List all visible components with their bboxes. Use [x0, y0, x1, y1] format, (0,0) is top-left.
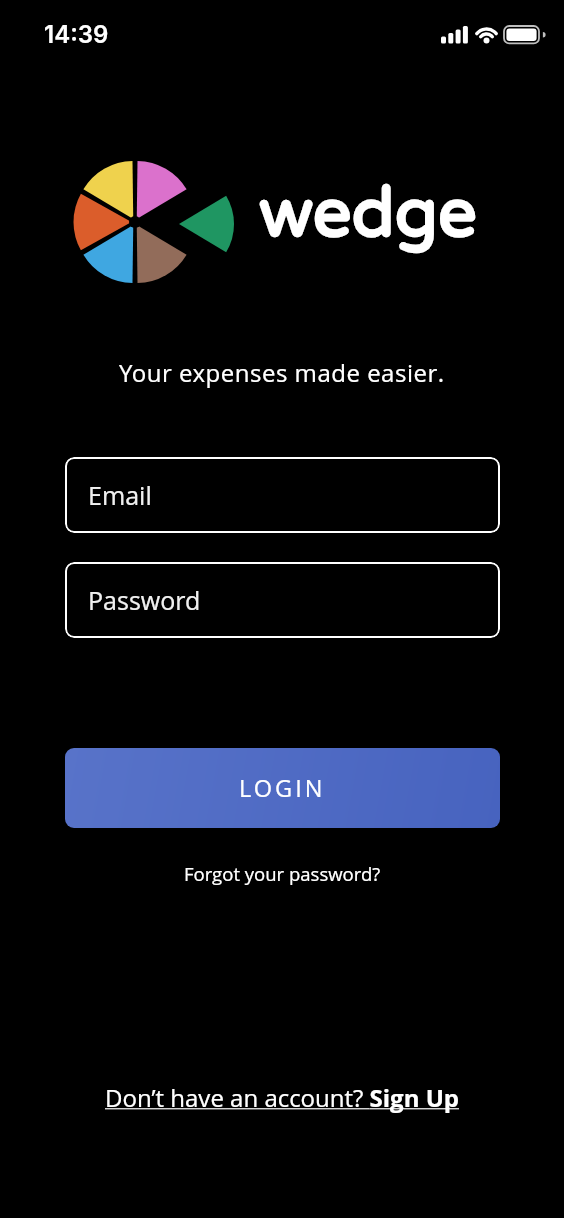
staticText: 14:39	[44, 20, 109, 49]
staticText: Your expenses made easier.	[119, 356, 445, 389]
button[interactable]: LOGIN	[65, 748, 500, 828]
button[interactable]: Don’t have an account? Sign Up	[105, 1081, 459, 1114]
staticText: LOGIN	[239, 772, 326, 804]
staticText: Email	[88, 478, 152, 512]
staticText: wedge	[259, 173, 477, 255]
button[interactable]: Password	[65, 562, 500, 638]
staticText: wedge	[259, 173, 477, 255]
button[interactable]: Forgot your password?	[184, 861, 381, 886]
button[interactable]: Email	[65, 457, 500, 533]
staticText: Password	[88, 583, 201, 617]
